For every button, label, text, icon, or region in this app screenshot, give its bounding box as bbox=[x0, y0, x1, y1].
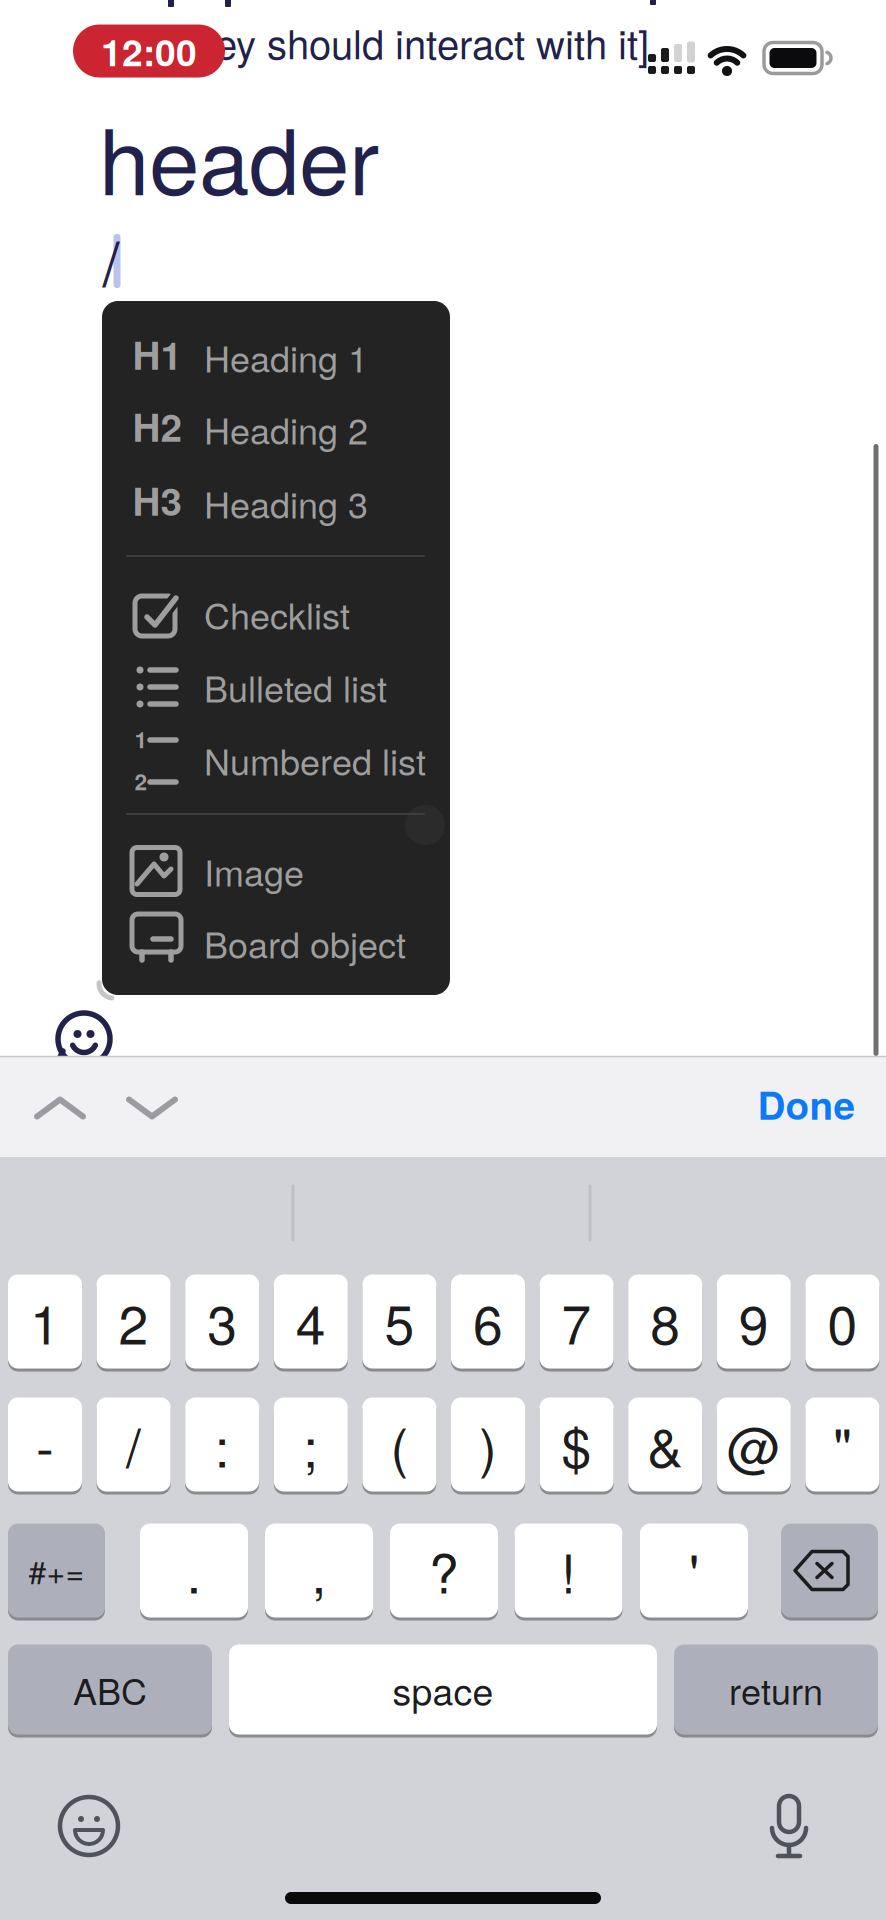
staticText: : bbox=[215, 1406, 230, 1483]
staticText: Heading 2 bbox=[204, 403, 368, 455]
staticText: H1 bbox=[132, 326, 181, 382]
staticText: 9 bbox=[739, 1283, 769, 1360]
staticText: 1 bbox=[134, 723, 147, 755]
staticText: 3 bbox=[207, 1283, 237, 1360]
staticText: Image bbox=[204, 845, 304, 897]
staticText: $ bbox=[562, 1406, 592, 1483]
button[interactable]: Board object bbox=[102, 909, 532, 977]
button[interactable]: 1 bbox=[8, 1274, 82, 1371]
button[interactable]: Next field bbox=[127, 1095, 177, 1120]
button[interactable]: Image bbox=[102, 837, 532, 905]
button[interactable]: ) bbox=[451, 1397, 525, 1494]
staticText: Heading 1 bbox=[204, 331, 368, 383]
button[interactable]: 6 bbox=[451, 1274, 525, 1371]
button[interactable]: #+= bbox=[8, 1523, 105, 1620]
staticText: " bbox=[833, 1406, 852, 1483]
button[interactable]: @ bbox=[717, 1397, 791, 1494]
staticText: 1 bbox=[30, 1283, 60, 1360]
button[interactable]: ( bbox=[362, 1397, 436, 1494]
button[interactable]: Add emoji bbox=[58, 1013, 110, 1075]
staticText: / bbox=[126, 1406, 141, 1483]
button[interactable]: Emoji bbox=[60, 1797, 118, 1855]
staticText: 2 bbox=[119, 1283, 149, 1360]
button[interactable]: return bbox=[674, 1644, 878, 1737]
button[interactable]: - bbox=[8, 1397, 82, 1494]
button[interactable]: 4 bbox=[274, 1274, 348, 1371]
staticText: & bbox=[647, 1406, 683, 1483]
button[interactable]: Checklist bbox=[102, 580, 532, 648]
staticText: H3 bbox=[132, 472, 181, 528]
staticText: 7 bbox=[562, 1283, 592, 1360]
staticText: ( bbox=[390, 1406, 408, 1483]
staticText: ? bbox=[429, 1532, 459, 1609]
button[interactable]: $ bbox=[540, 1397, 614, 1494]
staticText: ; bbox=[303, 1406, 318, 1483]
button[interactable]: 5 bbox=[362, 1274, 436, 1371]
staticText: 12:00 bbox=[101, 24, 197, 78]
staticText: Done bbox=[757, 1076, 854, 1132]
staticText: Numbered list bbox=[204, 734, 426, 786]
staticText: 2 bbox=[134, 765, 147, 797]
button[interactable]: 7 bbox=[540, 1274, 614, 1371]
button[interactable]: . bbox=[140, 1523, 248, 1620]
button[interactable]: " bbox=[805, 1397, 879, 1494]
staticText: ! bbox=[561, 1532, 576, 1609]
button[interactable]: space bbox=[229, 1644, 657, 1737]
staticText: 4 bbox=[296, 1283, 326, 1360]
button[interactable]: 2 bbox=[97, 1274, 171, 1371]
staticText: . bbox=[186, 1532, 201, 1609]
staticText: 8 bbox=[650, 1283, 680, 1360]
staticText: #+= bbox=[28, 1548, 84, 1593]
button[interactable]: & bbox=[628, 1397, 702, 1494]
staticText: ) bbox=[479, 1406, 497, 1483]
button[interactable]: Delete bbox=[781, 1523, 878, 1620]
button[interactable]: ; bbox=[274, 1397, 348, 1494]
button[interactable]: ' bbox=[640, 1523, 748, 1620]
staticText: Bulleted list bbox=[204, 661, 387, 713]
staticText: ey should interact with it] bbox=[215, 13, 649, 71]
button[interactable]: ! bbox=[514, 1523, 622, 1620]
staticText: , bbox=[311, 1532, 326, 1609]
button[interactable]: Heading 2 bbox=[102, 395, 532, 463]
staticText: ' bbox=[689, 1532, 699, 1609]
staticText: @ bbox=[727, 1406, 781, 1483]
staticText: header bbox=[99, 91, 379, 221]
button[interactable]: 8 bbox=[628, 1274, 702, 1371]
button[interactable]: : bbox=[185, 1397, 259, 1494]
button[interactable]: Stop screen recording bbox=[73, 24, 225, 77]
staticText: H2 bbox=[132, 398, 181, 454]
button[interactable]: Dictate bbox=[766, 1794, 812, 1858]
staticText: 0 bbox=[827, 1283, 857, 1360]
staticText: 6 bbox=[473, 1283, 503, 1360]
staticText: 5 bbox=[384, 1283, 414, 1360]
staticText: Board object bbox=[204, 917, 406, 969]
staticText: Checklist bbox=[204, 588, 350, 640]
button[interactable]: Heading 1 bbox=[102, 323, 532, 391]
button[interactable]: ? bbox=[390, 1523, 498, 1620]
staticText: Heading 3 bbox=[204, 477, 368, 529]
button[interactable]: 3 bbox=[185, 1274, 259, 1371]
button[interactable]: Done bbox=[757, 1076, 854, 1132]
staticText: ABC bbox=[73, 1664, 147, 1715]
button[interactable]: Bulleted list bbox=[102, 653, 532, 721]
staticText: / bbox=[102, 216, 119, 304]
staticText: - bbox=[36, 1406, 54, 1483]
button[interactable]: 1 bbox=[102, 726, 532, 794]
button[interactable]: Previous field bbox=[35, 1095, 85, 1120]
button[interactable]: 9 bbox=[717, 1274, 791, 1371]
staticText: space bbox=[392, 1663, 493, 1716]
button[interactable]: Heading 3 bbox=[102, 469, 532, 537]
button[interactable]: , bbox=[265, 1523, 373, 1620]
button[interactable]: 0 bbox=[805, 1274, 879, 1371]
button[interactable]: / bbox=[97, 1397, 171, 1494]
button[interactable]: ABC bbox=[8, 1644, 212, 1737]
staticText: return bbox=[729, 1664, 823, 1715]
